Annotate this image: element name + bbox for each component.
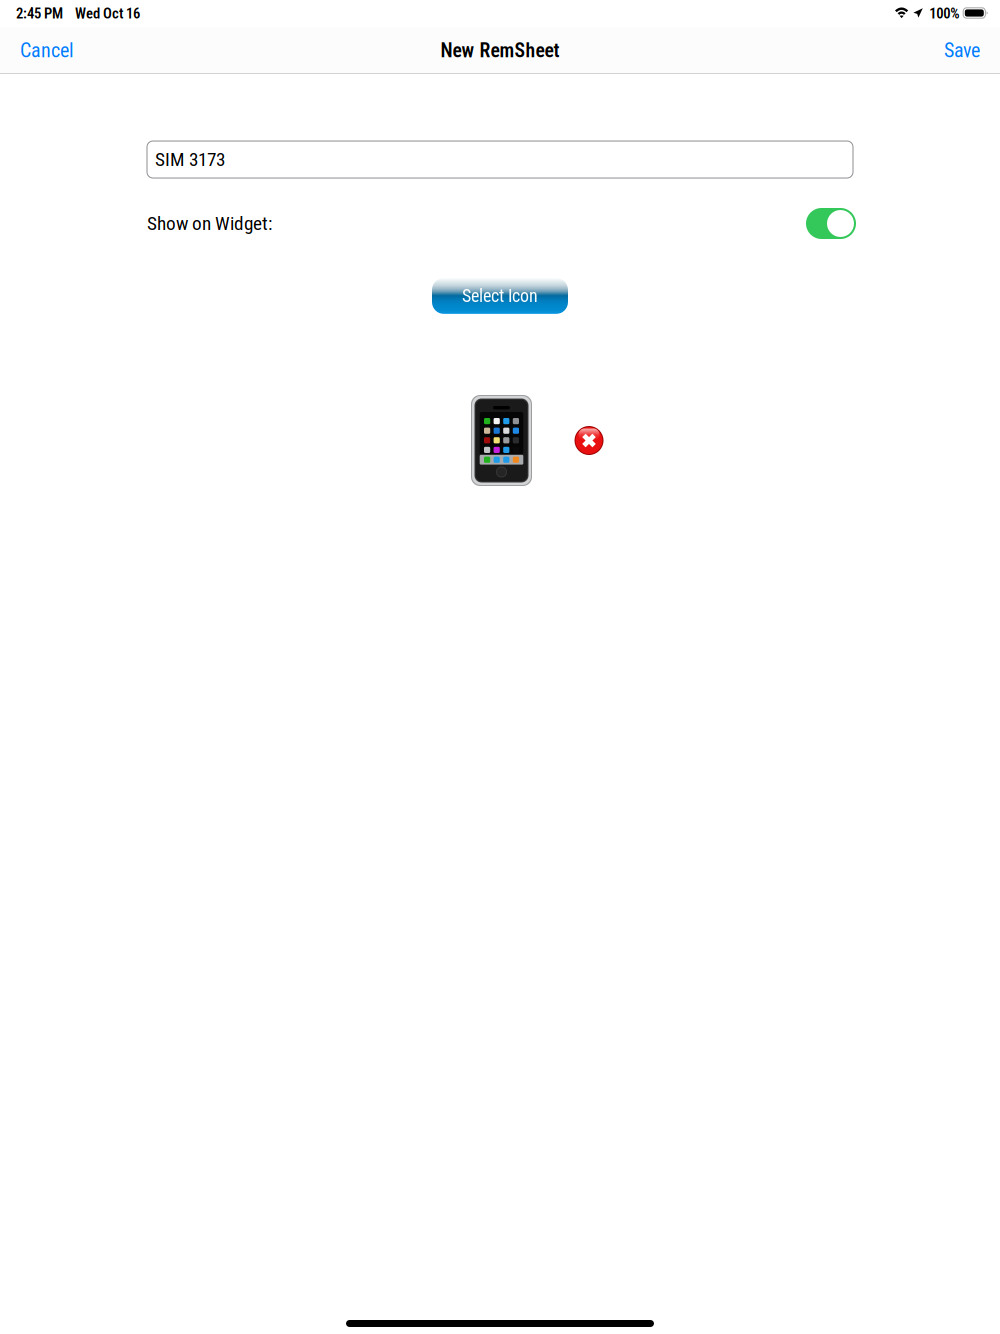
staticText: SIM 3173 xyxy=(155,148,225,171)
button[interactable]: Save xyxy=(924,27,1000,73)
button[interactable]: Show on Widget xyxy=(806,208,856,239)
button[interactable]: Remove icon xyxy=(570,421,608,459)
staticText: New RemSheet xyxy=(440,39,559,62)
button[interactable]: Selected icon xyxy=(471,395,532,486)
button[interactable]: Select Icon xyxy=(432,278,568,314)
button[interactable]: Cancel xyxy=(0,27,94,73)
staticText: Save xyxy=(944,39,980,62)
staticText: Select Icon xyxy=(462,285,538,306)
staticText: Show on Widget: xyxy=(147,212,272,235)
staticText: 2:45 PM xyxy=(16,5,63,22)
staticText: Wed Oct 16 xyxy=(75,5,140,22)
staticText: 100% xyxy=(929,5,959,22)
staticText: Cancel xyxy=(20,39,74,62)
